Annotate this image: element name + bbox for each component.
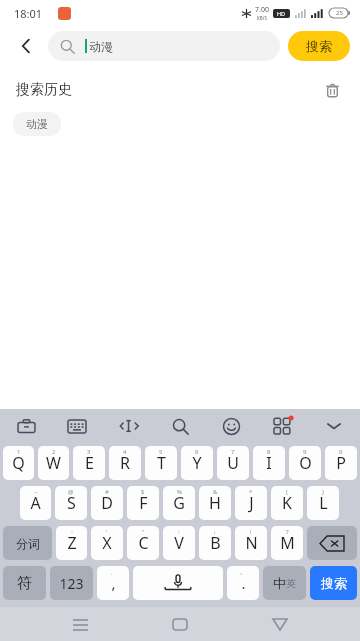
button[interactable]: G — [163, 486, 195, 520]
staticText: " — [142, 528, 145, 536]
button[interactable]: Home — [160, 607, 200, 641]
staticText: ~ — [34, 488, 38, 496]
button[interactable]: 搜索 — [288, 31, 350, 61]
button[interactable]: 搜索 — [310, 566, 357, 600]
button[interactable]: S — [55, 486, 87, 520]
staticText: 0 — [339, 448, 343, 456]
button[interactable]: D — [91, 486, 123, 520]
staticText: P — [336, 452, 346, 474]
staticText: 。 — [240, 568, 246, 576]
button[interactable] — [133, 566, 223, 600]
staticText: C — [138, 532, 149, 554]
staticText: B — [210, 532, 221, 554]
staticText: 1 — [17, 448, 21, 456]
staticText: * — [249, 488, 253, 496]
button[interactable]: F — [127, 486, 159, 520]
button[interactable]: W — [38, 446, 69, 480]
button[interactable]: U — [217, 446, 249, 480]
staticText: 搜索 — [321, 575, 347, 591]
staticText: ! — [250, 528, 252, 536]
button[interactable]: 符 — [3, 566, 46, 600]
staticText: Y — [192, 452, 202, 474]
staticText: # — [105, 488, 109, 496]
staticText: 7 — [231, 448, 235, 456]
staticText: R — [120, 452, 130, 474]
button[interactable]: Recent apps — [60, 607, 100, 641]
staticText: ( — [286, 488, 288, 496]
button[interactable]: Back — [260, 607, 300, 641]
button[interactable]: 中 — [263, 566, 306, 600]
staticText: 符 — [17, 574, 32, 593]
staticText: % — [177, 488, 182, 496]
button[interactable] — [307, 526, 357, 560]
button[interactable]: A — [20, 486, 51, 520]
button[interactable]: Back — [10, 30, 42, 62]
staticText: V — [174, 532, 184, 554]
button[interactable]: 动漫 — [48, 31, 280, 61]
staticText: F — [139, 492, 148, 514]
button[interactable]: E — [73, 446, 105, 480]
button[interactable]: . — [227, 566, 259, 600]
staticText: 6 — [195, 448, 199, 456]
button[interactable]: X — [91, 526, 123, 560]
staticText: J — [249, 492, 254, 514]
button[interactable]: J — [235, 486, 267, 520]
button[interactable]: 分词 — [3, 526, 52, 560]
staticText: H — [209, 492, 221, 514]
button[interactable]: T — [145, 446, 177, 480]
button[interactable]: I — [253, 446, 285, 480]
button[interactable]: Clipboard — [12, 412, 40, 440]
button[interactable]: More tools — [269, 412, 297, 440]
button[interactable]: 动漫 — [13, 112, 61, 136]
staticText: N — [245, 532, 258, 554]
button[interactable]: L — [307, 486, 339, 520]
staticText: 动漫 — [89, 39, 113, 54]
button[interactable]: Move cursor — [115, 412, 143, 440]
button[interactable]: N — [235, 526, 267, 560]
staticText: E — [85, 452, 94, 474]
staticText: ) — [322, 488, 324, 496]
staticText: G — [173, 492, 185, 514]
staticText: O — [299, 452, 312, 474]
button[interactable]: , — [97, 566, 129, 600]
staticText: X — [102, 532, 112, 554]
button[interactable]: B — [199, 526, 231, 560]
staticText: $ — [141, 488, 145, 496]
staticText: 搜索历史 — [16, 81, 72, 99]
button[interactable]: O — [289, 446, 321, 480]
staticText: 2 — [52, 448, 56, 456]
staticText: & — [213, 488, 218, 496]
staticText: 25 — [336, 9, 343, 17]
button[interactable]: Search — [166, 412, 194, 440]
button[interactable]: R — [109, 446, 141, 480]
staticText: 、 — [110, 568, 116, 576]
staticText: - — [71, 528, 73, 536]
button[interactable]: C — [127, 526, 159, 560]
button[interactable]: Hide keyboard — [320, 412, 348, 440]
button[interactable]: M — [271, 526, 303, 560]
staticText: 9 — [303, 448, 307, 456]
button[interactable]: Y — [181, 446, 213, 480]
staticText: HD — [277, 10, 286, 17]
staticText: 动漫 — [26, 117, 48, 131]
staticText: D — [101, 492, 113, 514]
staticText: , — [111, 573, 116, 593]
staticText: 123 — [59, 574, 84, 593]
button[interactable]: Q — [3, 446, 34, 480]
staticText: U — [227, 452, 239, 474]
button[interactable]: V — [163, 526, 195, 560]
button[interactable]: Keyboard layout — [63, 412, 91, 440]
button[interactable]: Emoji — [217, 412, 245, 440]
button[interactable]: 123 — [50, 566, 93, 600]
button[interactable]: H — [199, 486, 231, 520]
staticText: 5 — [159, 448, 163, 456]
staticText: 英 — [286, 577, 296, 590]
staticText: 18:01 — [14, 6, 43, 21]
staticText: 分词 — [16, 536, 40, 551]
button[interactable]: Clear history — [320, 78, 344, 102]
staticText: W — [46, 452, 61, 474]
button[interactable]: K — [271, 486, 303, 520]
button[interactable]: Z — [56, 526, 87, 560]
button[interactable]: P — [325, 446, 357, 480]
staticText: 8 — [267, 448, 271, 456]
